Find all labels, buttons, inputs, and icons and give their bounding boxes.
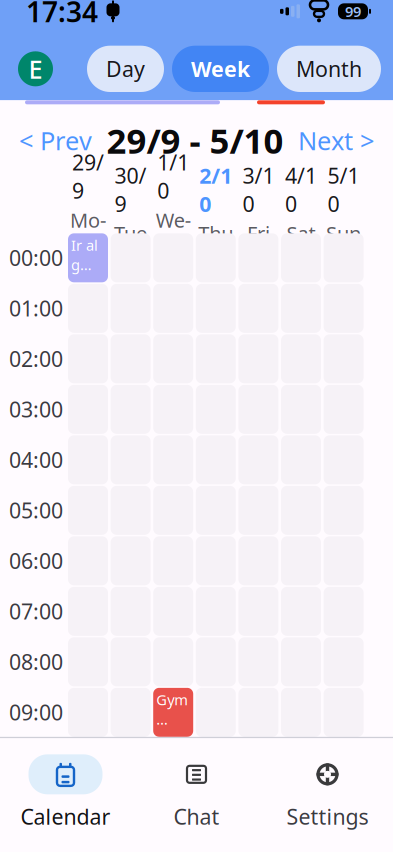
button[interactable]: Calendar <box>0 750 131 835</box>
staticText: 2/10 <box>199 161 232 218</box>
staticText: < Prev <box>19 123 92 157</box>
button[interactable]: Settings <box>262 750 393 835</box>
button[interactable]: Tue 00:00 slot <box>111 233 151 282</box>
staticText: 3/10 <box>242 161 274 218</box>
staticText: E <box>28 52 42 86</box>
staticText: Sun <box>326 220 361 246</box>
staticText: 08:00 <box>9 648 63 676</box>
button[interactable]: Sun 00:00 slot <box>324 233 364 282</box>
staticText: 01:00 <box>9 294 63 322</box>
button[interactable]: Ir al gimnasio event <box>68 233 108 282</box>
staticText: Month <box>296 55 362 83</box>
staticText: 02:00 <box>9 345 63 373</box>
staticText: 1/10 <box>157 148 189 205</box>
staticText: 4/10 <box>285 161 317 218</box>
staticText: 5/10 <box>328 161 360 218</box>
button[interactable]: Month <box>277 46 381 92</box>
staticText: 17:34 <box>26 0 98 30</box>
button[interactable]: Week <box>172 46 269 92</box>
button[interactable]: Chat <box>131 750 262 835</box>
staticText: Wed <box>156 207 191 260</box>
staticText: 09:00 <box>9 698 63 726</box>
staticText: 07:00 <box>9 597 63 625</box>
staticText: Week <box>191 55 250 83</box>
button[interactable]: Next > <box>292 117 380 163</box>
staticText: 03:00 <box>9 395 63 423</box>
button[interactable]: Fri 00:00 slot <box>238 233 278 282</box>
staticText: Next > <box>298 123 374 157</box>
staticText: Ir al g… <box>71 235 98 274</box>
button[interactable]: < Prev <box>13 117 98 163</box>
button[interactable]: Thu 00:00 slot <box>196 233 236 282</box>
staticText: 00:00 <box>9 244 63 272</box>
button[interactable]: Day <box>87 46 164 92</box>
button[interactable]: Profile <box>18 51 53 86</box>
button[interactable]: Gym event <box>153 688 193 737</box>
